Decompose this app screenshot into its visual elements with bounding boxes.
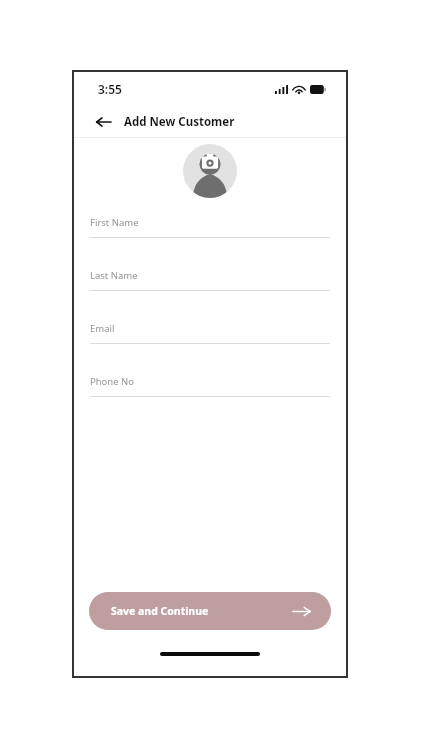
- staticText: Add New Customer: [124, 114, 235, 130]
- button[interactable]: First Name: [90, 216, 330, 269]
- staticText: Phone No: [90, 375, 135, 388]
- staticText: Save and Continue: [111, 604, 209, 618]
- button[interactable]: Last Name: [90, 269, 330, 322]
- staticText: 3:55: [98, 81, 122, 97]
- button[interactable]: Phone No: [90, 375, 330, 428]
- button[interactable]: Change profile photo: [183, 144, 237, 198]
- staticText: Last Name: [90, 269, 138, 282]
- button[interactable]: Email: [90, 322, 330, 375]
- button[interactable]: Save and Continue: [89, 592, 331, 630]
- button[interactable]: Back: [90, 109, 116, 135]
- staticText: Email: [90, 322, 115, 335]
- staticText: First Name: [90, 216, 139, 229]
